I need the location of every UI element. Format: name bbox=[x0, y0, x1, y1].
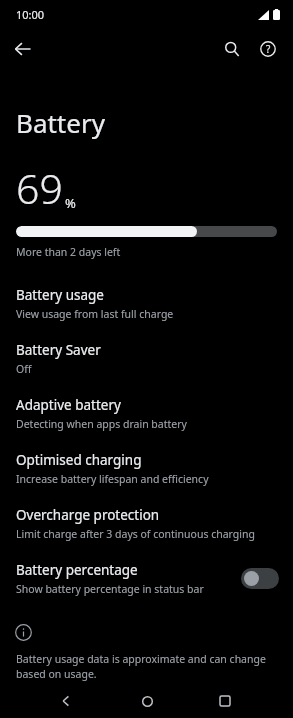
button[interactable]: Battery usage bbox=[0, 276, 293, 331]
staticText: More than 2 days left bbox=[16, 245, 121, 259]
staticText: Battery Saver bbox=[16, 341, 101, 359]
staticText: Increase battery lifespan and efficiency bbox=[16, 472, 209, 486]
button[interactable]: Battery percentage toggle bbox=[241, 568, 279, 589]
button[interactable]: Help bbox=[252, 33, 284, 65]
button[interactable]: Battery Saver bbox=[0, 331, 293, 386]
staticText: ? bbox=[266, 42, 271, 56]
button[interactable]: Back bbox=[7, 33, 39, 65]
button[interactable]: Search bbox=[216, 33, 248, 65]
staticText: 10:00 bbox=[16, 7, 45, 22]
button[interactable]: Home bbox=[131, 685, 163, 717]
staticText: Detecting when apps drain battery bbox=[16, 417, 187, 431]
staticText: Adaptive battery bbox=[16, 396, 121, 414]
staticText: Show battery percentage in status bar bbox=[16, 582, 204, 596]
button[interactable]: Battery percentage bbox=[0, 551, 293, 606]
staticText: 69 bbox=[16, 160, 63, 216]
staticText: Optimised charging bbox=[16, 451, 142, 469]
button[interactable]: Optimised charging bbox=[0, 441, 293, 496]
staticText: View usage from last full charge bbox=[16, 307, 174, 321]
button[interactable]: Overcharge protection bbox=[0, 496, 293, 551]
button[interactable]: Back bbox=[50, 685, 82, 717]
staticText: Off bbox=[16, 362, 32, 376]
staticText: Battery usage data is approximate and ca… bbox=[16, 652, 279, 681]
staticText: Battery percentage bbox=[16, 561, 138, 579]
staticText: Overcharge protection bbox=[16, 506, 160, 524]
button[interactable]: Recent apps bbox=[209, 685, 241, 717]
staticText: % bbox=[65, 194, 76, 212]
staticText: Battery bbox=[16, 105, 105, 140]
staticText: Limit charge after 3 days of continuous … bbox=[16, 527, 255, 541]
staticText: Battery usage bbox=[16, 286, 104, 304]
button[interactable]: Adaptive battery bbox=[0, 386, 293, 441]
